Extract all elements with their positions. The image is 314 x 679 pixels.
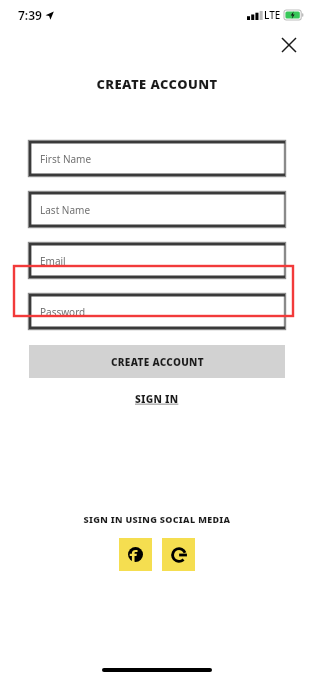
button[interactable]: Email xyxy=(29,243,285,278)
staticText: First Name xyxy=(40,152,92,166)
button[interactable]: CREATE ACCOUNT xyxy=(29,345,285,378)
staticText: Password xyxy=(40,305,86,319)
button[interactable]: Close xyxy=(274,30,304,60)
button[interactable]: SIGN IN xyxy=(129,390,185,408)
button[interactable]: Sign in with Google xyxy=(162,538,195,571)
staticText: 7:39 xyxy=(18,7,42,23)
staticText: SIGN IN USING SOCIAL MEDIA xyxy=(0,513,314,525)
button[interactable]: Sign in with Facebook xyxy=(119,538,152,571)
button[interactable]: First Name xyxy=(29,141,285,176)
staticText: Last Name xyxy=(40,203,91,217)
button[interactable]: Last Name xyxy=(29,192,285,227)
staticText: SIGN IN xyxy=(135,392,179,406)
button[interactable]: Password xyxy=(29,294,285,329)
staticText: CREATE ACCOUNT xyxy=(0,75,314,93)
staticText: LTE xyxy=(264,8,281,22)
staticText: CREATE ACCOUNT xyxy=(111,355,204,369)
staticText: Email xyxy=(40,254,66,268)
